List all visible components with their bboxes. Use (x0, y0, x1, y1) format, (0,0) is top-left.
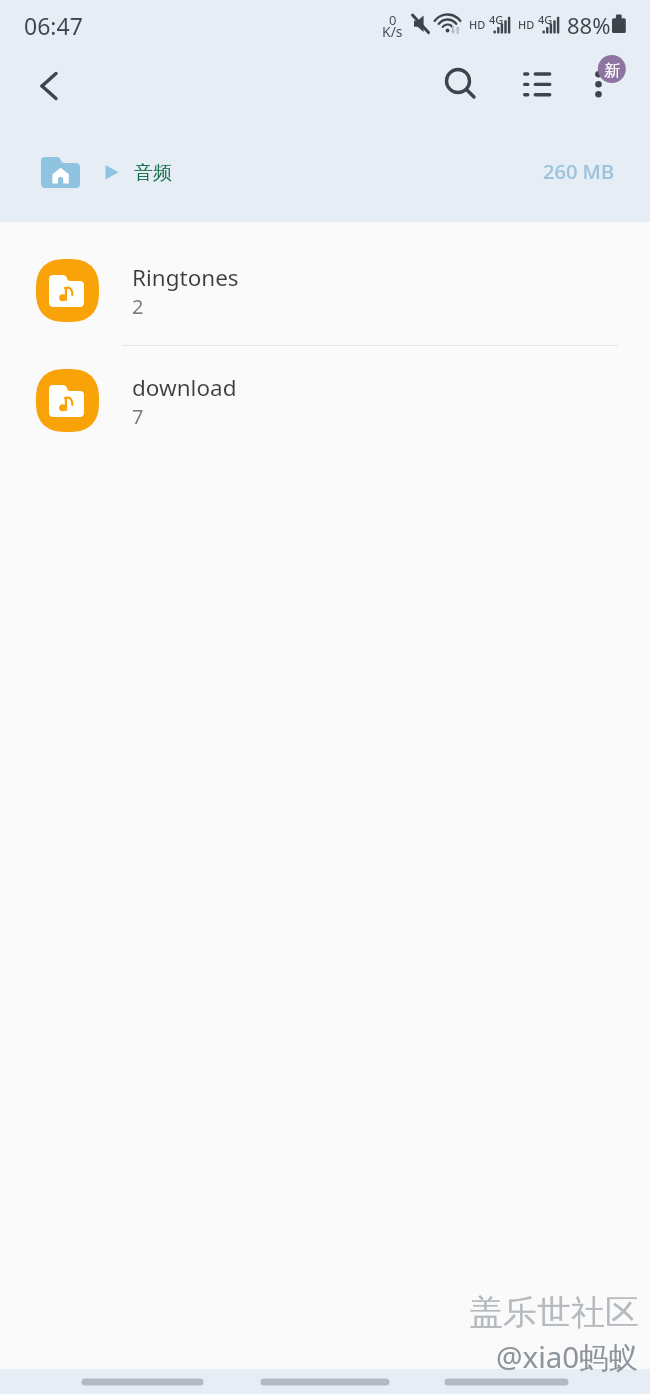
button[interactable]: Home folder (33, 149, 89, 205)
staticText: Ringtones (132, 262, 239, 293)
staticText: 4G (489, 12, 504, 27)
staticText: @xia0蚂蚁 (496, 1336, 639, 1376)
staticText: 音频 (134, 161, 172, 185)
staticText: 新 (604, 61, 620, 81)
button[interactable]: Search (434, 61, 482, 109)
staticText: 4G (538, 12, 553, 27)
button[interactable]: View as list (512, 61, 560, 109)
staticText: 0 (389, 11, 397, 29)
staticText: 06:47 (24, 10, 83, 41)
button[interactable]: download (0, 334, 650, 444)
button[interactable]: Back (25, 65, 73, 113)
staticText: 盖乐世社区 (469, 1291, 639, 1334)
button[interactable]: Ringtones (0, 224, 650, 334)
staticText: 7 (132, 403, 144, 430)
staticText: K/s (382, 22, 403, 41)
staticText: HD (469, 17, 486, 32)
staticText: 2 (132, 293, 144, 320)
staticText: HD (518, 17, 535, 32)
staticText: download (132, 372, 237, 403)
staticText: 88% (567, 10, 611, 40)
staticText: 260 MB (543, 158, 614, 185)
button[interactable]: More options (575, 53, 625, 103)
